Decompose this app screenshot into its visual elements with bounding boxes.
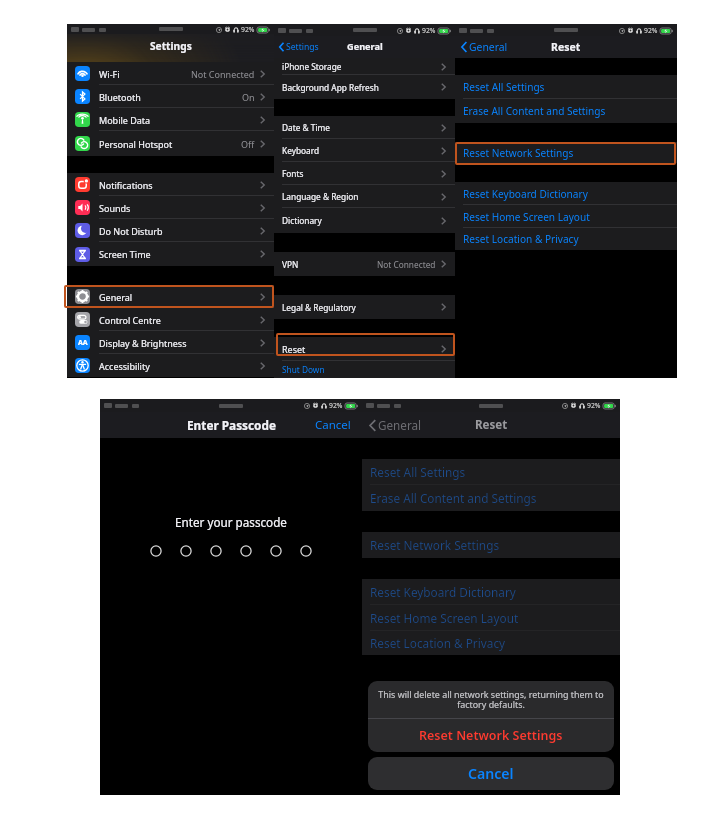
staticText: 92% xyxy=(241,25,255,34)
button[interactable]: Accessibility xyxy=(67,354,274,377)
button[interactable]: Wi-Fi xyxy=(67,62,274,85)
staticText: General xyxy=(378,417,422,433)
button[interactable]: Back to General xyxy=(369,417,478,433)
button[interactable]: Cancel xyxy=(315,417,351,433)
staticText: Reset Home Screen Layout xyxy=(463,210,590,224)
staticText: Reset xyxy=(475,417,508,433)
button[interactable]: Reset Location & Privacy xyxy=(362,631,620,655)
staticText: Reset Keyboard Dictionary xyxy=(463,187,588,201)
button[interactable]: Reset xyxy=(274,337,455,361)
staticText: Notifications xyxy=(99,179,153,191)
staticText: Erase All Content and Settings xyxy=(370,490,537,506)
button[interactable]: Reset All Settings xyxy=(455,75,677,99)
button[interactable]: iPhone Storage xyxy=(274,58,455,75)
staticText: Cancel xyxy=(315,417,351,433)
staticText: Fonts xyxy=(282,168,304,179)
staticText: 92% xyxy=(422,26,436,35)
button[interactable]: Sounds xyxy=(67,196,274,219)
staticText: Settings xyxy=(286,41,319,53)
staticText: Reset Location & Privacy xyxy=(370,635,506,651)
button[interactable]: Reset Home Screen Layout xyxy=(455,205,677,228)
button[interactable]: Erase All Content and Settings xyxy=(455,99,677,123)
staticText: On xyxy=(242,91,255,103)
button[interactable]: Do Not Disturb xyxy=(67,219,274,242)
button[interactable]: Reset All Settings xyxy=(362,459,620,485)
staticText: Display & Brightness xyxy=(99,337,187,349)
button[interactable]: AA xyxy=(67,331,274,354)
staticText: Legal & Regulatory xyxy=(282,302,356,313)
staticText: Reset All Settings xyxy=(463,80,545,94)
staticText: Date & Time xyxy=(282,122,330,133)
staticText: Control Centre xyxy=(99,314,161,326)
staticText: Bluetooth xyxy=(99,91,141,103)
button[interactable]: Dictionary xyxy=(274,208,455,233)
staticText: AA xyxy=(78,338,88,348)
staticText: Reset Network Settings xyxy=(463,146,574,160)
staticText: Enter your passcode xyxy=(100,514,362,530)
staticText: 92% xyxy=(644,26,658,35)
staticText: Erase All Content and Settings xyxy=(463,104,606,118)
staticText: Settings xyxy=(150,39,192,53)
staticText: Dictionary xyxy=(282,215,322,226)
button[interactable]: Reset Home Screen Layout xyxy=(362,605,620,631)
button[interactable]: Reset Network Settings xyxy=(455,142,677,163)
staticText: Off xyxy=(241,138,255,150)
staticText: Screen Time xyxy=(99,248,151,260)
button[interactable]: VPN xyxy=(274,252,455,276)
button[interactable]: Fonts xyxy=(274,162,455,185)
staticText: Keyboard xyxy=(282,145,320,156)
button[interactable]: Background App Refresh xyxy=(274,75,455,99)
button[interactable]: Reset Location & Privacy xyxy=(455,228,677,250)
staticText: General xyxy=(99,291,133,303)
staticText: This will delete all network settings, r… xyxy=(377,688,605,711)
button[interactable]: Mobile Data xyxy=(67,108,274,131)
staticText: iPhone Storage xyxy=(282,61,342,72)
staticText: VPN xyxy=(282,259,299,270)
staticText: Reset Location & Privacy xyxy=(463,232,579,246)
button[interactable]: Keyboard xyxy=(274,139,455,162)
button[interactable]: Back to Settings xyxy=(279,41,355,53)
button[interactable]: Control Centre xyxy=(67,308,274,331)
staticText: Personal Hotspot xyxy=(99,138,173,150)
button[interactable]: General xyxy=(67,285,274,308)
button[interactable]: Erase All Content and Settings xyxy=(362,485,620,511)
staticText: Background App Refresh xyxy=(282,82,379,93)
button[interactable]: Personal Hotspot xyxy=(67,131,274,156)
button[interactable]: Bluetooth xyxy=(67,85,274,108)
button[interactable]: Reset Keyboard Dictionary xyxy=(362,579,620,605)
button[interactable]: Reset Network Settings xyxy=(362,532,620,558)
staticText: Reset Home Screen Layout xyxy=(370,610,519,626)
staticText: Accessibility xyxy=(99,360,150,372)
button[interactable]: Date & Time xyxy=(274,116,455,139)
button[interactable]: Shut Down xyxy=(274,361,455,378)
button[interactable]: Reset Keyboard Dictionary xyxy=(455,182,677,205)
staticText: Not Connected xyxy=(377,259,436,270)
staticText: Reset xyxy=(551,40,581,54)
staticText: Sounds xyxy=(99,202,131,214)
staticText: Not Connected xyxy=(191,68,255,80)
staticText: Wi-Fi xyxy=(99,68,120,80)
staticText: Mobile Data xyxy=(99,114,151,126)
staticText: Reset Keyboard Dictionary xyxy=(370,584,516,600)
staticText: Reset Network Settings xyxy=(370,537,500,553)
staticText: General xyxy=(469,40,508,54)
staticText: Shut Down xyxy=(282,364,325,375)
staticText: Language & Region xyxy=(282,191,359,202)
staticText: Reset All Settings xyxy=(370,464,466,480)
button[interactable]: Back to General xyxy=(461,40,555,54)
button[interactable]: Language & Region xyxy=(274,185,455,208)
staticText: Reset xyxy=(282,343,306,355)
staticText: Reset Network Settings xyxy=(419,727,563,744)
staticText: 92% xyxy=(587,401,601,410)
button[interactable]: Legal & Regulatory xyxy=(274,295,455,319)
staticText: 92% xyxy=(329,401,343,410)
button[interactable]: Notifications xyxy=(67,173,274,196)
staticText: Cancel xyxy=(468,764,514,783)
staticText: Do Not Disturb xyxy=(99,225,163,237)
button[interactable]: Reset Network Settings xyxy=(368,719,614,752)
button[interactable]: Cancel xyxy=(368,757,614,790)
staticText: Enter Passcode xyxy=(187,417,276,433)
staticText: General xyxy=(347,40,383,53)
button[interactable]: Screen Time xyxy=(67,242,274,266)
